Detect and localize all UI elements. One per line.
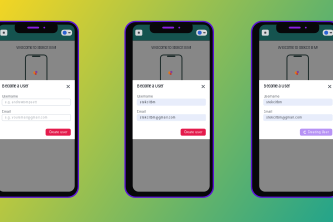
button[interactable]: Account [323,30,333,36]
staticText: Become a User [137,84,164,88]
staticText: Username [137,94,153,98]
staticText: e.g. andrewtompsett [5,100,37,104]
staticText: Username [263,94,279,98]
button[interactable]: Close [200,83,206,89]
staticText: e.g. youremail@gmail.com [5,116,48,119]
staticText: Create user [49,130,67,134]
staticText: Email [137,110,146,114]
button[interactable]: Create user [46,129,71,136]
staticText: stekcitbm@gmail.com [266,116,302,119]
staticText: stekcitbm [266,100,282,104]
staticText: Welcome to Stekcit BM! [278,45,318,50]
staticText: Become a User [263,84,290,88]
staticText: Welcome to Stekcit BM! [16,45,56,50]
staticText: stekcitbm [140,100,156,104]
button[interactable]: Account [61,30,72,36]
staticText: Email [263,110,272,114]
staticText: Create user [184,130,202,134]
staticText: Username [2,94,18,98]
staticText: Become a User [2,84,29,88]
button[interactable]: Account [196,30,207,36]
button[interactable]: Tabs [262,30,269,36]
button[interactable]: Close [327,83,333,89]
button[interactable]: Close [65,83,71,89]
button[interactable]: Creating User [300,129,332,136]
button[interactable]: Tabs [135,30,142,36]
button[interactable]: Create user [181,129,206,136]
staticText: Welcome to Stekcit BM! [151,45,191,50]
staticText: Email [2,110,11,114]
staticText: stekcitbm@gmail.com [140,116,176,119]
staticText: Creating User [308,130,329,134]
button[interactable]: Tabs [0,30,7,36]
